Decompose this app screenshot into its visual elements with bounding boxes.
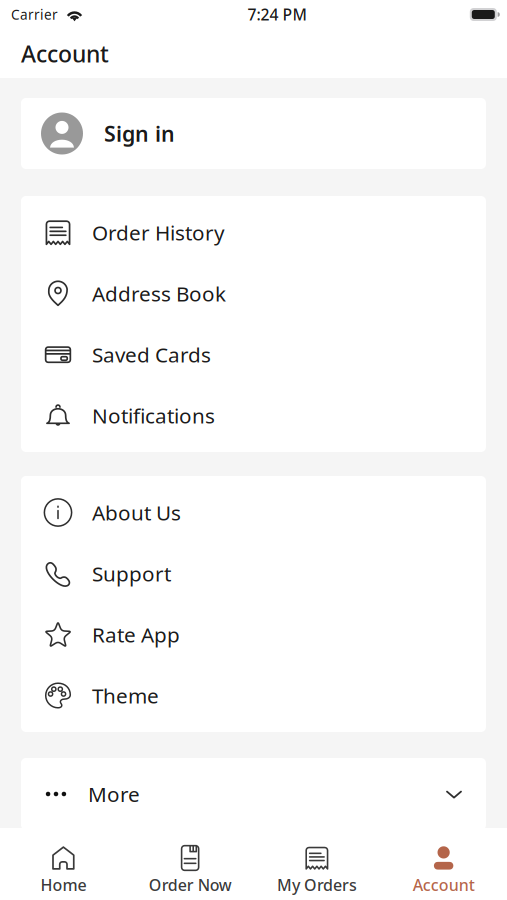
button[interactable]: Saved Cards bbox=[21, 324, 486, 385]
button[interactable]: My Orders bbox=[253, 828, 380, 900]
button[interactable]: Order History bbox=[21, 202, 486, 263]
staticText: Home bbox=[40, 874, 86, 896]
staticText: Rate App bbox=[92, 620, 180, 648]
button[interactable]: Support bbox=[21, 543, 486, 604]
button[interactable]: Account bbox=[380, 828, 507, 900]
staticText: Saved Cards bbox=[92, 340, 211, 368]
button[interactable]: Address Book bbox=[21, 263, 486, 324]
button[interactable]: About Us bbox=[21, 482, 486, 543]
button[interactable]: Home bbox=[0, 828, 127, 900]
button[interactable]: More bbox=[21, 758, 486, 830]
staticText: 7:24 PM bbox=[247, 4, 306, 25]
staticText: Support bbox=[92, 559, 171, 587]
button[interactable]: Order Now bbox=[127, 828, 254, 900]
staticText: Account bbox=[21, 38, 109, 69]
staticText: Carrier bbox=[11, 5, 58, 24]
staticText: Order Now bbox=[149, 874, 232, 896]
staticText: Notifications bbox=[92, 401, 215, 429]
button[interactable]: Theme bbox=[21, 665, 486, 726]
staticText: Sign in bbox=[104, 119, 175, 148]
staticText: About Us bbox=[92, 498, 181, 526]
button[interactable]: Notifications bbox=[21, 385, 486, 446]
staticText: More bbox=[88, 780, 140, 808]
staticText: My Orders bbox=[277, 874, 357, 896]
staticText: Account bbox=[413, 874, 475, 896]
button[interactable]: Sign in bbox=[21, 98, 486, 169]
staticText: Order History bbox=[92, 218, 225, 246]
staticText: Theme bbox=[92, 681, 159, 709]
button[interactable]: Rate App bbox=[21, 604, 486, 665]
staticText: Address Book bbox=[92, 279, 226, 307]
